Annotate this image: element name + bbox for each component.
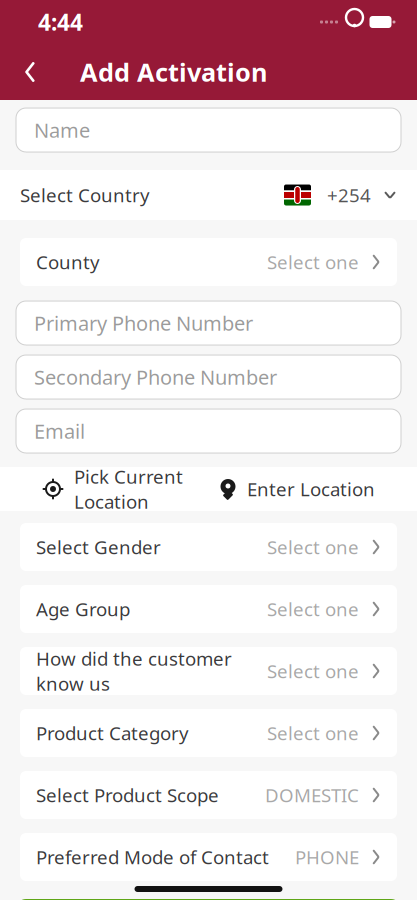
button[interactable]: Pick Current Location xyxy=(42,464,183,514)
staticText: Select one xyxy=(267,535,359,559)
button[interactable]: County xyxy=(0,238,417,286)
staticText: DOMESTIC xyxy=(265,783,359,807)
button[interactable]: Select Product Scope xyxy=(0,771,417,819)
button[interactable]: Select Gender xyxy=(0,523,417,571)
staticText: Add Activation xyxy=(80,55,267,89)
staticText: County xyxy=(36,250,100,274)
staticText: Select Country xyxy=(20,183,150,207)
staticText: Select one xyxy=(267,250,359,274)
staticText: Select one xyxy=(267,659,359,683)
staticText: 4:44 xyxy=(38,7,83,37)
button[interactable]: Preferred Mode of Contact xyxy=(0,833,417,881)
staticText: Secondary Phone Number xyxy=(34,364,277,390)
button[interactable]: Age Group xyxy=(0,585,417,633)
staticText: Select one xyxy=(267,597,359,621)
staticText: Select Gender xyxy=(36,535,161,559)
staticText: Enter Location xyxy=(247,477,375,501)
staticText: PHONE xyxy=(295,845,359,869)
staticText: Name xyxy=(34,117,90,143)
staticText: Preferred Mode of Contact xyxy=(36,845,269,869)
button[interactable]: Select Country xyxy=(0,170,417,220)
staticText: +254 xyxy=(327,183,371,207)
staticText: Product Category xyxy=(36,721,189,745)
button[interactable]: Back xyxy=(8,50,52,94)
staticText: Email xyxy=(34,418,85,444)
staticText: How did the customer know us xyxy=(36,646,232,696)
staticText: Age Group xyxy=(36,597,130,621)
staticText: Select one xyxy=(267,721,359,745)
staticText: Primary Phone Number xyxy=(34,310,253,336)
button[interactable]: How did the customer know us xyxy=(0,647,417,695)
button[interactable]: Enter Location xyxy=(219,477,375,501)
button[interactable]: Product Category xyxy=(0,709,417,757)
staticText: Pick Current Location xyxy=(74,464,183,514)
staticText: Select Product Scope xyxy=(36,783,219,807)
button[interactable]: Submit xyxy=(0,899,417,900)
